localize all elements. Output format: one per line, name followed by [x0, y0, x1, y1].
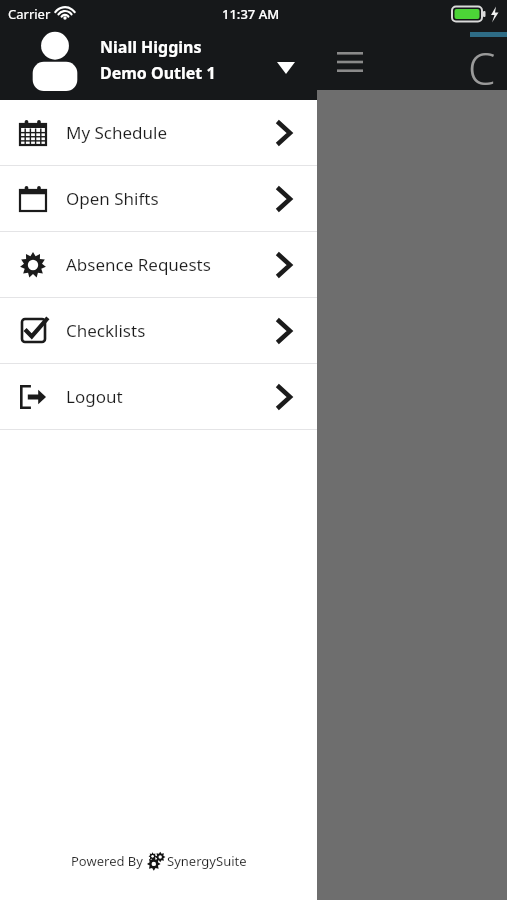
button[interactable]: Menu	[330, 42, 370, 82]
staticText: Checklists	[66, 319, 146, 342]
staticText: Logout	[66, 385, 123, 408]
staticText: Niall Higgins	[100, 36, 202, 58]
staticText: Carrier	[8, 5, 51, 23]
button[interactable]: Niall Higgins	[0, 24, 317, 96]
button[interactable]: Open Shifts	[0, 166, 317, 231]
staticText: Absence Requests	[66, 253, 211, 276]
button[interactable]: Checklists	[0, 298, 317, 363]
button[interactable]: Absence Requests	[0, 232, 317, 297]
staticText: Demo Outlet 1	[100, 62, 216, 84]
staticText: SynergySuite	[167, 852, 247, 870]
staticText: My Schedule	[66, 121, 168, 144]
button[interactable]: My Schedule	[0, 100, 317, 165]
staticText: Powered By	[71, 852, 147, 870]
staticText: C	[468, 38, 496, 98]
staticText: Open Shifts	[66, 187, 159, 210]
button[interactable]: Logout	[0, 364, 317, 429]
staticText: 11:37 AM	[222, 5, 280, 23]
